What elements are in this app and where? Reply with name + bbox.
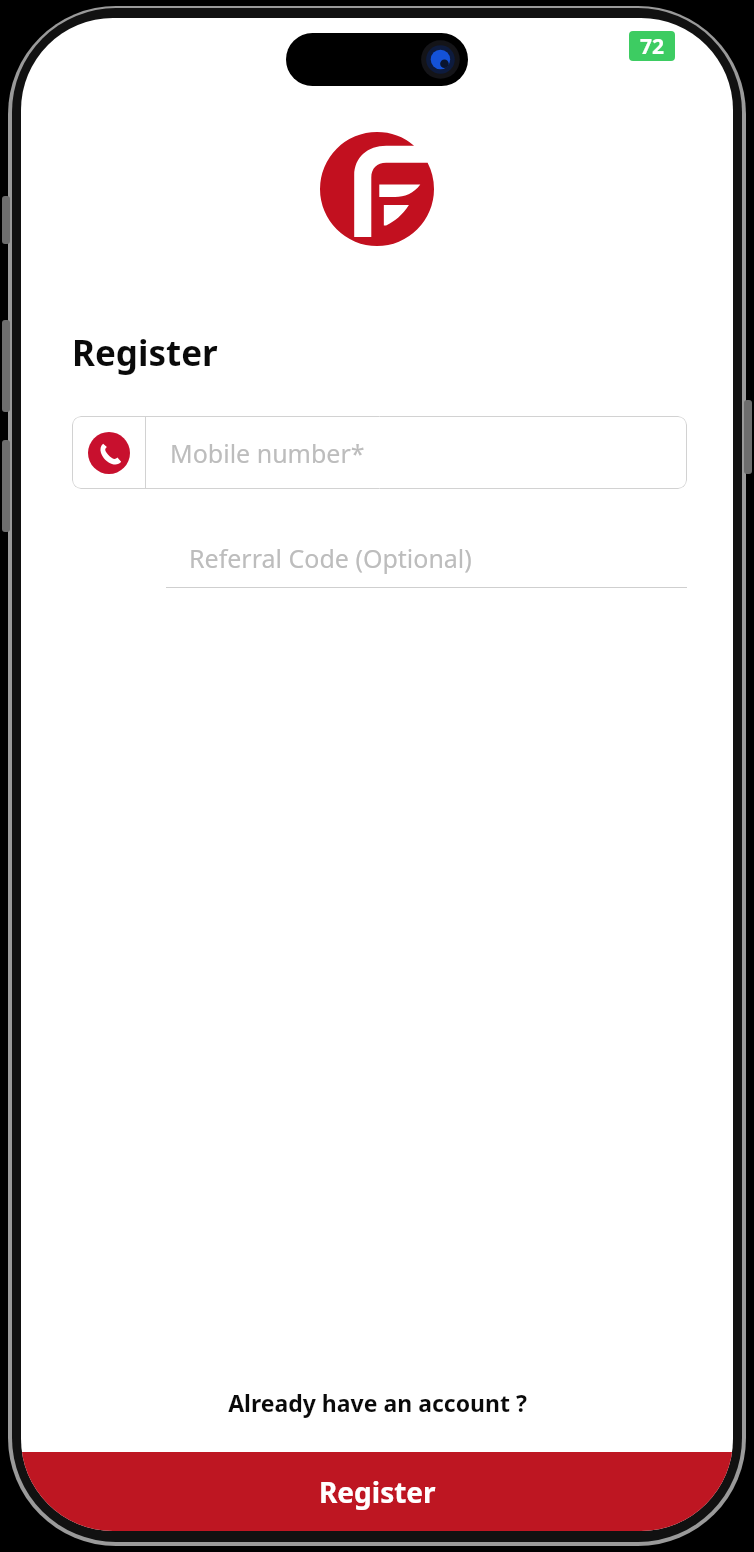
staticText: Referral Code (Optional) [189, 541, 472, 575]
staticText: Mobile number* [170, 436, 365, 470]
button[interactable]: Register [21, 1452, 733, 1531]
staticText: 72 [640, 32, 665, 61]
other: Phone [88, 432, 130, 474]
staticText: Register [319, 1473, 436, 1511]
button[interactable]: Already have an account ? [21, 1374, 733, 1430]
staticText: Already have an account ? [228, 1387, 527, 1418]
button[interactable]: Referral Code (Optional) [166, 528, 687, 588]
staticText: Register [72, 329, 218, 377]
button[interactable]: Phone [72, 416, 687, 489]
